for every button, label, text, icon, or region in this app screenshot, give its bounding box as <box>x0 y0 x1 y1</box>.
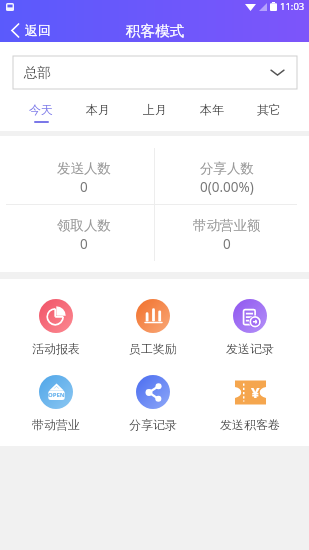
staticText: 0(0.00%) <box>200 178 254 196</box>
staticText: 总部 <box>24 64 51 81</box>
button[interactable]: 其它 <box>240 99 297 127</box>
staticText: 领取人数 <box>57 217 111 234</box>
button[interactable]: 发送人数 <box>12 160 155 196</box>
staticText: 上月 <box>143 102 167 117</box>
button[interactable]: 发送记录 <box>201 299 298 356</box>
button[interactable]: 活动报表 <box>7 299 104 356</box>
staticText: ¥ <box>251 382 260 402</box>
staticText: 11:03 <box>280 0 305 13</box>
staticText: 分享记录 <box>129 417 177 432</box>
staticText: 发送人数 <box>57 160 111 177</box>
staticText: 发送积客卷 <box>220 417 280 432</box>
button[interactable]: ¥ <box>201 375 298 432</box>
button[interactable]: 分享人数 <box>155 160 299 196</box>
staticText: 发送记录 <box>226 341 274 356</box>
staticText: 返回 <box>25 22 51 38</box>
staticText: 带动营业 <box>32 417 80 432</box>
staticText: 分享人数 <box>200 160 254 177</box>
staticText: 本月 <box>86 102 110 117</box>
staticText: 0 <box>223 235 231 253</box>
staticText: 今天 <box>29 102 53 117</box>
staticText: 本年 <box>200 102 224 117</box>
button[interactable]: 今天 <box>12 99 69 127</box>
staticText: 0 <box>80 235 88 253</box>
staticText: OPEN <box>48 391 65 399</box>
button[interactable]: 上月 <box>126 99 183 127</box>
button[interactable]: 领取人数 <box>12 217 155 253</box>
button[interactable]: 返回 <box>11 19 51 41</box>
button[interactable]: 带动营业额 <box>155 217 299 253</box>
button[interactable]: 本月 <box>69 99 126 127</box>
staticText: 积客模式 <box>126 22 184 40</box>
staticText: 其它 <box>257 102 281 117</box>
staticText: 带动营业额 <box>193 217 261 234</box>
button[interactable]: OPEN <box>7 375 104 432</box>
staticText: 员工奖励 <box>129 341 177 356</box>
button[interactable]: 分享记录 <box>104 375 201 432</box>
staticText: 活动报表 <box>32 341 80 356</box>
staticText: 0 <box>80 178 88 196</box>
button[interactable]: 员工奖励 <box>104 299 201 356</box>
button[interactable]: 总部 <box>13 56 297 89</box>
button[interactable]: 本年 <box>183 99 240 127</box>
